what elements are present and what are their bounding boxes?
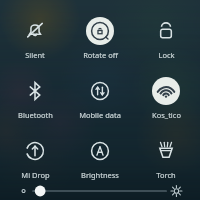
button[interactable]: Kos_tico [135,74,197,122]
button[interactable]: Brightness slider [16,182,184,200]
staticText: Bluetooth [18,110,53,120]
button[interactable]: Lock [135,14,197,62]
button[interactable]: Torch [135,134,197,182]
staticText: Kos_tico [152,110,181,120]
button[interactable]: Silent [4,14,66,62]
staticText: Mi Drop [21,170,50,180]
staticText: Lock [158,50,175,60]
staticText: Torch [156,170,176,180]
staticText: Silent [25,50,45,60]
button[interactable]: Rotate off [69,14,131,62]
staticText: Rotate off [83,50,118,60]
staticText: Brightness [81,170,119,180]
button[interactable]: Brightness [69,134,131,182]
button[interactable]: Mi Drop [4,134,66,182]
button[interactable]: Bluetooth [4,74,66,122]
button[interactable]: Mobile data [69,74,131,122]
staticText: Mobile data [79,110,121,120]
